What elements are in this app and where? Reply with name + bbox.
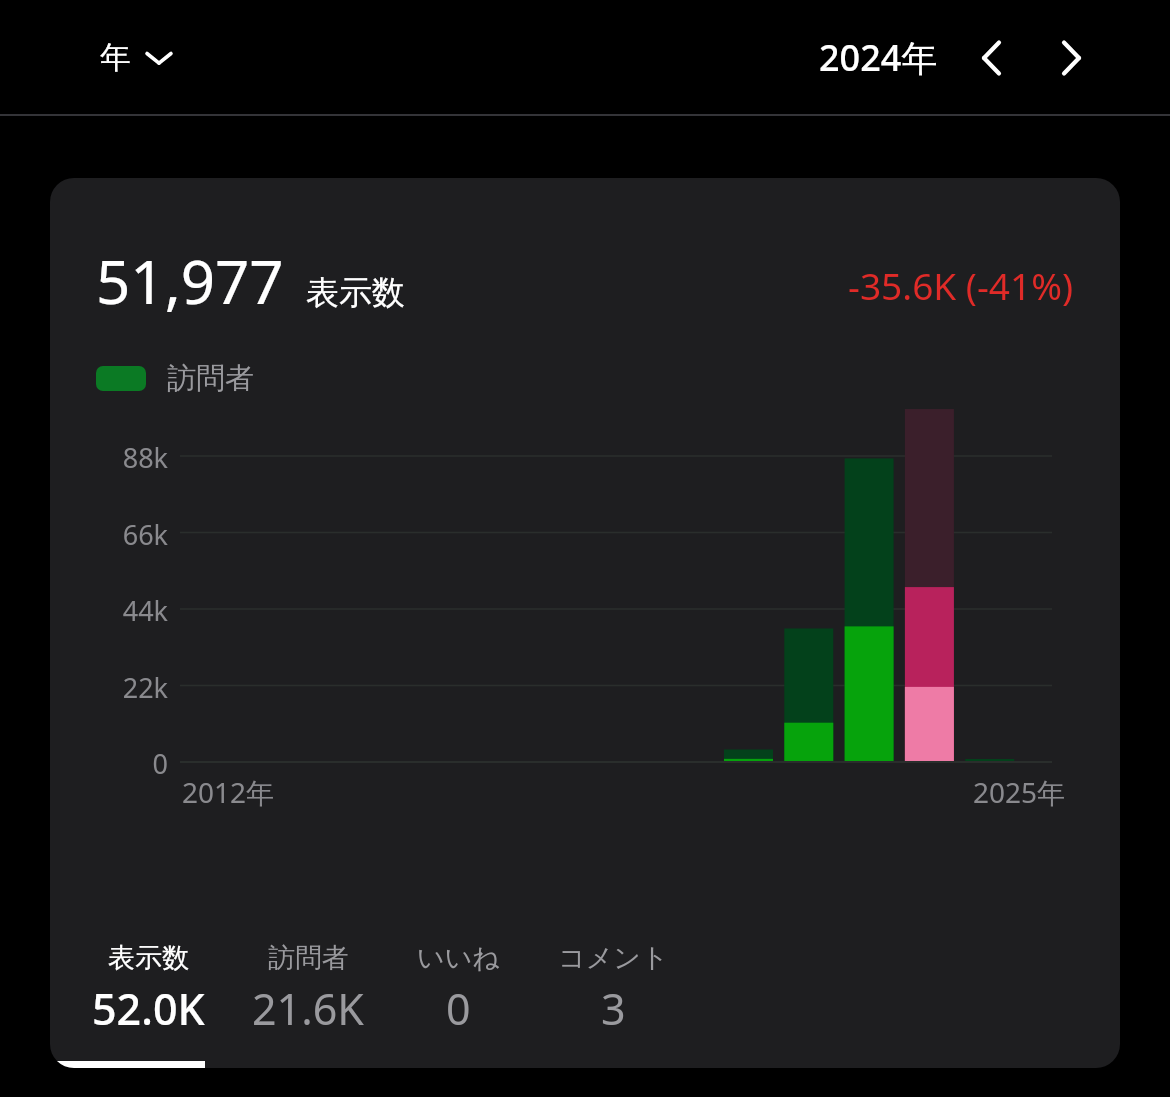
button[interactable]: Next year: [1048, 35, 1094, 81]
staticText: 88k: [50, 439, 168, 476]
staticText: 66k: [50, 516, 168, 553]
staticText: 0: [50, 745, 168, 782]
button[interactable]: 2024年: [813, 27, 944, 88]
button[interactable]: Previous year: [968, 35, 1014, 81]
staticText: 訪問者: [167, 360, 254, 397]
staticText: 2024年: [819, 33, 938, 82]
staticText: いいね: [417, 941, 500, 975]
staticText: 2025年: [973, 773, 1066, 811]
button[interactable]: 表示数: [68, 937, 228, 1042]
staticText: 52.0K: [92, 979, 205, 1038]
staticText: 表示数: [108, 941, 189, 975]
staticText: 訪問者: [268, 941, 349, 975]
staticText: コメント: [558, 941, 669, 975]
staticText: 22k: [50, 669, 168, 706]
button[interactable]: コメント: [528, 937, 698, 1042]
staticText: 2012年: [182, 773, 275, 811]
button[interactable]: 訪問者: [228, 937, 388, 1042]
staticText: 0: [446, 979, 471, 1038]
button[interactable]: 51,977: [50, 178, 1120, 1068]
staticText: 年: [100, 38, 131, 77]
staticText: -35.6K (-41%): [848, 260, 1074, 310]
staticText: 表示数: [306, 272, 405, 314]
staticText: 21.6K: [252, 979, 364, 1038]
staticText: 51,977: [96, 240, 284, 322]
staticText: 3: [601, 979, 626, 1038]
button[interactable]: 訪問者: [96, 360, 262, 397]
button[interactable]: いいね: [388, 937, 528, 1042]
staticText: 44k: [50, 592, 168, 629]
button[interactable]: 年: [88, 30, 183, 85]
